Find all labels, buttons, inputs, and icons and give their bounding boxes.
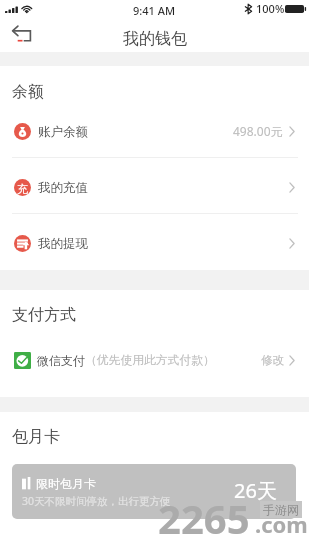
button[interactable]: 充	[0, 157, 309, 213]
staticText: 修改	[261, 353, 284, 367]
staticText: 我的钱包	[123, 29, 187, 49]
staticText: 26天	[234, 477, 277, 504]
button[interactable]: Back	[4, 20, 40, 52]
staticText: .com	[255, 509, 308, 539]
staticText: 30天不限时间停放，出行更方便	[22, 494, 171, 508]
staticText: 2265	[158, 491, 250, 545]
staticText: 我的充值	[38, 180, 88, 196]
staticText: 包月卡	[12, 427, 60, 447]
button[interactable]: 账户余额	[0, 101, 309, 157]
staticText: 我的提现	[38, 236, 88, 252]
staticText: 100%	[256, 1, 285, 16]
button[interactable]: 微信支付	[0, 340, 309, 380]
staticText: 余额	[12, 82, 44, 102]
staticText: 微信支付	[37, 353, 85, 368]
staticText: 账户余额	[38, 124, 88, 140]
staticText: 充	[17, 182, 28, 196]
staticText: 支付方式	[12, 305, 76, 325]
button[interactable]: 我的提现	[0, 213, 309, 269]
staticText: 498.00元	[233, 123, 283, 139]
button[interactable]: 限时包月卡	[12, 464, 296, 519]
staticText: 限时包月卡	[36, 476, 96, 491]
staticText: （优先使用此方式付款）	[85, 353, 215, 368]
staticText: 9:41 AM	[133, 3, 176, 18]
staticText: 手游网	[263, 502, 299, 517]
